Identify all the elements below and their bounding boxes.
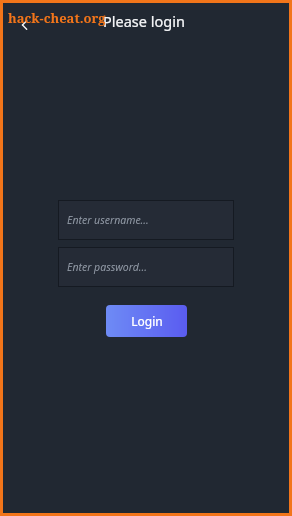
button[interactable]: Enter username...: [58, 200, 234, 240]
button[interactable]: Back: [9, 9, 41, 41]
staticText: Login: [131, 313, 163, 329]
staticText: Enter password...: [67, 260, 147, 274]
button[interactable]: Login: [106, 305, 187, 337]
staticText: hack-cheat.org: [8, 9, 106, 27]
button[interactable]: Enter password...: [58, 247, 234, 287]
staticText: Enter username...: [67, 213, 149, 227]
staticText: Please login: [103, 11, 185, 31]
